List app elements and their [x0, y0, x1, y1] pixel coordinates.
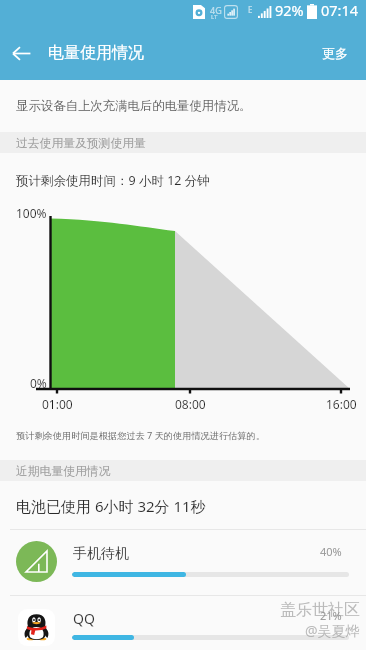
staticText: 显示设备自上次充满电后的电量使用情况。: [16, 98, 252, 114]
staticText: 07:14: [321, 0, 359, 20]
staticText: 盖乐世社区: [280, 600, 360, 620]
staticText: 40%: [320, 544, 342, 559]
button[interactable]: Back: [6, 38, 36, 68]
button[interactable]: 更多: [318, 40, 352, 66]
staticText: 21%: [320, 608, 342, 623]
staticText: 4G: [210, 4, 222, 16]
button[interactable]: QQ: [0, 595, 366, 650]
staticText: 近期电量使用情况: [16, 464, 111, 479]
staticText: 16:00: [326, 396, 357, 412]
staticText: 过去使用量及预测使用量: [16, 136, 146, 151]
staticText: 预计剩余使用时间：9 小时 12 分钟: [16, 172, 210, 189]
staticText: 手机待机: [73, 545, 129, 563]
staticText: 更多: [322, 45, 348, 61]
staticText: 电量使用情况: [48, 43, 144, 63]
button[interactable]: 手机待机: [0, 529, 366, 595]
staticText: 电池已使用 6小时 32分 11秒: [16, 496, 206, 516]
staticText: @吴夏烨: [305, 621, 360, 640]
staticText: 92%: [275, 0, 304, 20]
staticText: 08:00: [175, 396, 206, 412]
staticText: 01:00: [42, 396, 73, 412]
staticText: 预计剩余使用时间是根据您过去 7 天的使用情况进行估算的。: [16, 429, 265, 442]
staticText: 0%: [30, 375, 47, 391]
staticText: QQ: [73, 609, 95, 628]
staticText: LT: [211, 13, 218, 21]
staticText: E: [248, 4, 253, 15]
staticText: 100%: [16, 205, 47, 221]
